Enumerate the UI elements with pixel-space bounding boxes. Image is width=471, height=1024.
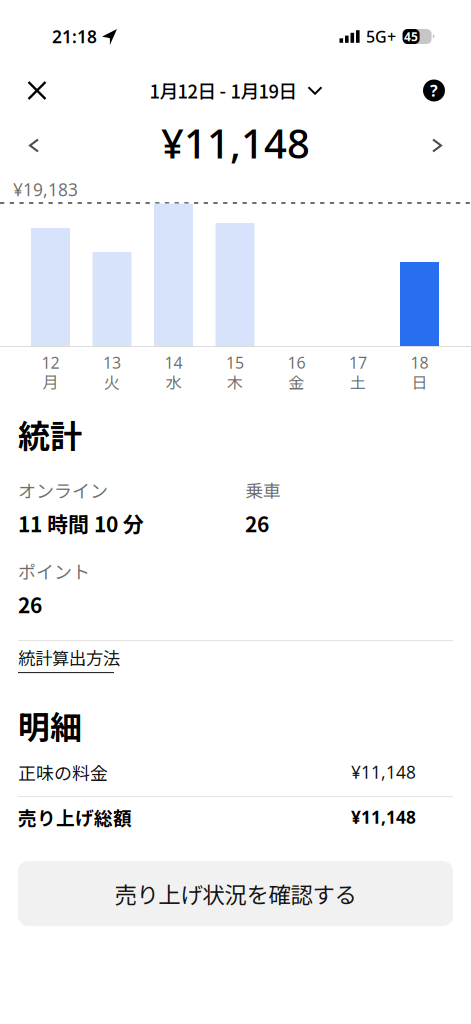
- staticText: 売り上げ総額: [18, 804, 132, 831]
- staticText: 45: [404, 28, 418, 44]
- staticText: 乗車: [245, 477, 281, 503]
- button[interactable]: Previous week: [12, 123, 56, 167]
- staticText: 11 時間 10 分: [18, 508, 144, 538]
- staticText: 26: [18, 589, 42, 619]
- staticText: ¥19,183: [13, 178, 78, 201]
- staticText: 16: [287, 352, 305, 373]
- staticText: オンライン: [18, 477, 108, 503]
- staticText: 統計算出方法: [18, 645, 120, 670]
- button[interactable]: Help: [412, 68, 456, 112]
- staticText: 21:18: [52, 25, 97, 48]
- staticText: 売り上げ状況を確認する: [114, 877, 356, 910]
- staticText: 日: [411, 370, 427, 393]
- staticText: 1月12日 - 1月19日: [149, 77, 296, 104]
- staticText: ¥11,148: [351, 806, 416, 829]
- staticText: 5G+: [366, 26, 396, 47]
- staticText: 12: [41, 352, 59, 373]
- staticText: 統計: [18, 411, 82, 457]
- staticText: 17: [349, 352, 367, 373]
- button[interactable]: 売り上げ状況を確認する: [18, 861, 453, 926]
- button[interactable]: Next week: [415, 123, 459, 167]
- staticText: ?: [430, 80, 438, 101]
- staticText: 土: [350, 370, 366, 393]
- staticText: 正味の料金: [18, 759, 108, 785]
- staticText: 13: [103, 352, 121, 373]
- staticText: 14: [164, 352, 182, 373]
- staticText: 火: [104, 370, 120, 393]
- staticText: ¥11,148: [351, 761, 416, 784]
- staticText: 木: [227, 370, 243, 393]
- staticText: 金: [288, 370, 304, 393]
- staticText: 26: [245, 508, 269, 538]
- staticText: ポイント: [18, 558, 90, 584]
- button[interactable]: Close: [15, 68, 59, 112]
- staticText: 18: [410, 352, 428, 373]
- staticText: 15: [226, 352, 244, 373]
- button[interactable]: 1月12日 - 1月19日: [139, 63, 331, 112]
- staticText: 明細: [18, 702, 82, 748]
- button[interactable]: 統計算出方法: [18, 641, 120, 681]
- staticText: 月: [42, 370, 58, 393]
- staticText: 水: [165, 370, 181, 393]
- staticText: ¥11,148: [161, 116, 310, 169]
